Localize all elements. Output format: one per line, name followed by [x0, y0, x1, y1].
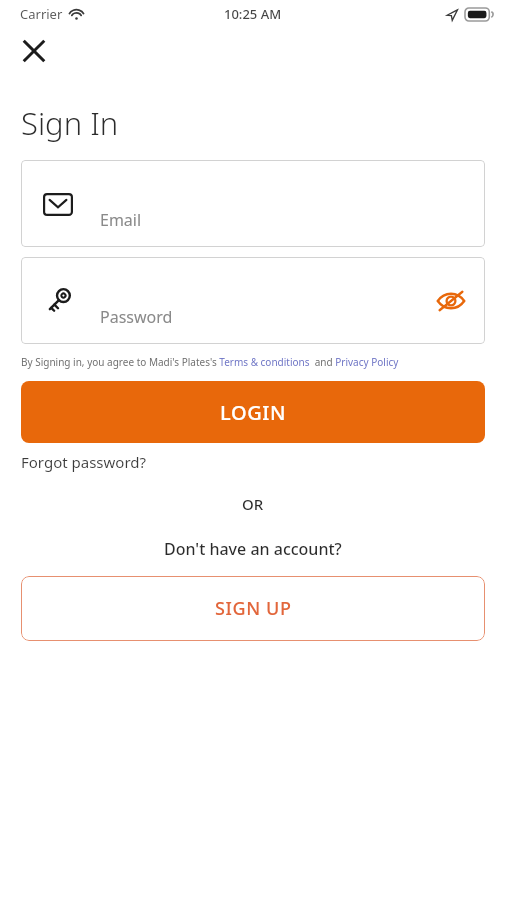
- button[interactable]: Forgot password?: [21, 452, 147, 472]
- staticText: OR: [242, 494, 264, 514]
- staticText: 10:25 AM: [224, 5, 282, 23]
- staticText: By Signing in, you agree to Madi's Plate…: [21, 355, 488, 369]
- staticText: LOGIN: [220, 399, 287, 426]
- staticText: Email: [100, 209, 142, 231]
- button[interactable]: Email: [21, 160, 485, 247]
- button[interactable]: Show password: [433, 283, 469, 319]
- staticText: Password: [100, 306, 173, 328]
- button[interactable]: Close: [14, 31, 54, 71]
- button[interactable]: LOGIN: [21, 381, 485, 443]
- staticText: Carrier: [20, 5, 63, 23]
- staticText: SIGN UP: [215, 596, 292, 621]
- button[interactable]: SIGN UP: [21, 576, 485, 641]
- staticText: Don't have an account?: [164, 538, 342, 560]
- button[interactable]: Password: [21, 257, 485, 344]
- staticText: Sign In: [21, 102, 119, 144]
